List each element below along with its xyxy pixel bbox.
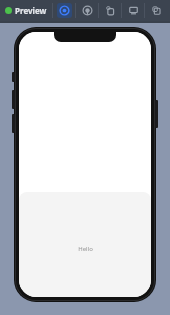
- button[interactable]: Run preview: [76, 0, 98, 21]
- button[interactable]: Multiple devices: [145, 0, 167, 21]
- button[interactable]: Interactive preview: [53, 0, 75, 21]
- staticText: Hello: [78, 245, 93, 253]
- button[interactable]: Device screen: [122, 0, 144, 21]
- button[interactable]: Hello: [72, 243, 99, 255]
- staticText: Preview: [15, 5, 47, 16]
- button[interactable]: Preview: [0, 5, 52, 16]
- button[interactable]: Copy: [99, 0, 121, 21]
